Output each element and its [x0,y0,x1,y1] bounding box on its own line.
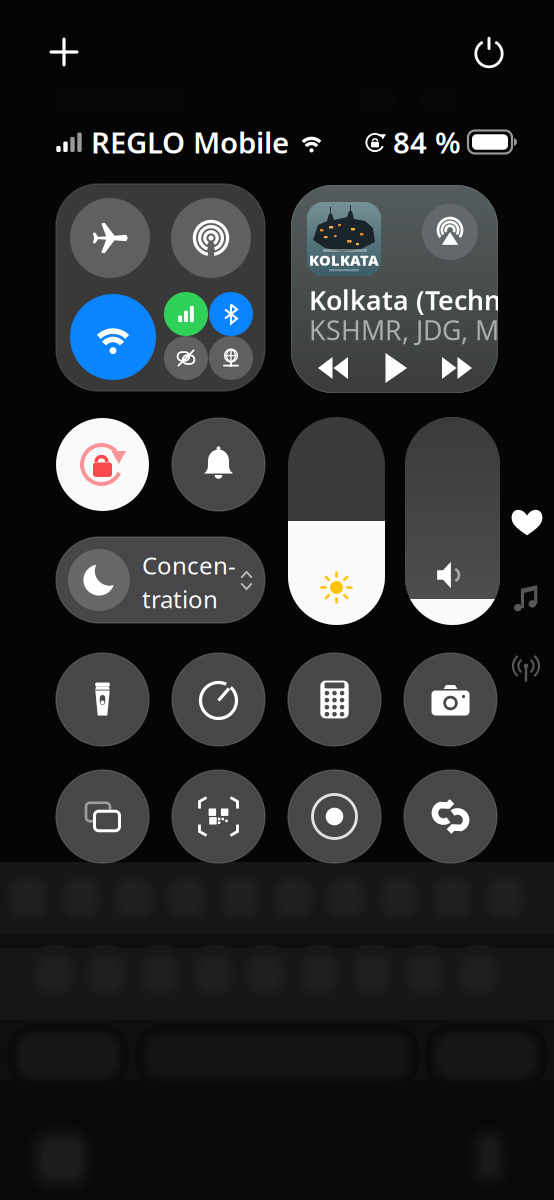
button[interactable]: Flashlight [56,653,149,746]
staticText: tration [142,583,218,615]
button[interactable]: Calculator [288,653,381,746]
staticText: Concen- [142,549,236,581]
button[interactable]: Silent Mode [172,418,265,511]
staticText: REGLO Mobile [91,122,289,161]
button[interactable]: VPN [209,336,253,380]
button[interactable]: Play [375,348,415,388]
button[interactable]: Connectivity [504,650,548,690]
button[interactable]: AirDrop [171,198,251,278]
button[interactable]: Concen- [56,537,265,623]
button[interactable]: Timer [172,653,265,746]
button[interactable]: Volume [405,417,500,625]
button[interactable]: Code Scanner [172,770,265,863]
button[interactable]: Screen Recording [288,770,381,863]
staticText: KOLKATA [309,250,379,270]
button[interactable]: Shazam [404,770,497,863]
button[interactable]: Favorites [505,504,549,540]
button[interactable]: Brightness [288,417,385,625]
staticText: Kolkata (Techno W [309,282,549,318]
staticText: KSHMR, JDG, Marni [309,312,548,348]
button[interactable]: Camera [404,653,497,746]
button[interactable]: Airplane Mode [70,198,150,278]
button[interactable]: Cellular Data [164,292,208,336]
button[interactable]: Wi-Fi [70,294,156,380]
button[interactable]: Previous track [313,348,353,388]
button[interactable]: AirPlay [422,204,478,260]
button[interactable]: Add a control [38,26,90,78]
staticText: 84 % [393,122,461,161]
button[interactable]: Rotation Lock [56,418,149,511]
button[interactable]: Power off [463,26,515,78]
button[interactable]: Now Playing [506,580,546,618]
button[interactable]: Next track [437,348,477,388]
button[interactable]: Personal Hotspot [164,336,208,380]
button[interactable]: Screen Mirroring [56,770,149,863]
button[interactable]: Bluetooth [209,292,253,336]
